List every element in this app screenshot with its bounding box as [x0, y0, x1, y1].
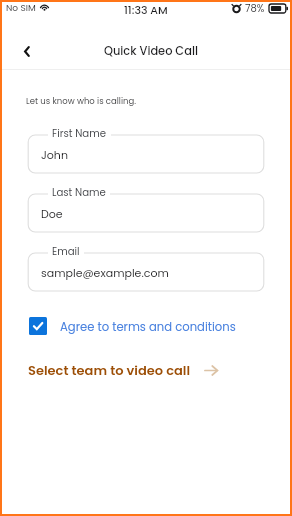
staticText: Email	[52, 244, 80, 258]
staticText: sample@example.com	[41, 265, 169, 280]
staticText: Select team to video call	[28, 361, 191, 379]
staticText: Let us know who is calling.	[26, 95, 137, 107]
staticText: 11:33 AM	[124, 2, 168, 17]
staticText: John	[41, 147, 68, 162]
button[interactable]: Back	[12, 38, 40, 66]
button[interactable]: Select team to video call	[28, 361, 219, 379]
staticText: Quick Video Call	[104, 43, 198, 59]
staticText: Doe	[41, 206, 63, 221]
staticText: Last Name	[52, 185, 106, 199]
staticText: 78%	[245, 1, 265, 15]
staticText: No SIM	[6, 2, 36, 15]
staticText: Agree to terms and conditions	[60, 319, 236, 335]
button[interactable]: Agree to terms and conditions	[26, 318, 236, 336]
staticText: First Name	[52, 126, 107, 140]
